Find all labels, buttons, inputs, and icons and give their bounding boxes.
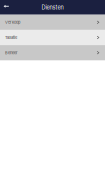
staticText: Diensten: [41, 4, 63, 11]
button[interactable]: Taxatie: [0, 30, 105, 45]
staticText: Beheer: [5, 50, 18, 55]
staticText: Taxatie: [5, 35, 17, 40]
staticText: Verkoop: [5, 20, 20, 25]
button[interactable]: Beheer: [0, 45, 105, 60]
button[interactable]: Back: [0, 0, 14, 15]
button[interactable]: Verkoop: [0, 15, 105, 30]
